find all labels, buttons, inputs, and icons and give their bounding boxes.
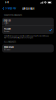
staticText: Select the language you want to use in t… (4, 35, 49, 39)
button[interactable]: Русский (2, 26, 54, 34)
staticText: English (4, 19, 11, 22)
staticText: Language (22, 7, 34, 10)
staticText: English (4, 22, 9, 24)
button[interactable]: Українська (2, 44, 54, 52)
button[interactable]: Orange Pay (0, 5, 18, 12)
staticText: Orange Pay (5, 7, 16, 10)
staticText: Russian (4, 30, 10, 32)
button[interactable]: English (2, 18, 54, 26)
staticText: 9:41 (5, 1, 9, 4)
staticText: Ukrainian (4, 49, 11, 51)
staticText: ALL LANGUAGES (4, 41, 16, 43)
staticText: Українська (4, 46, 14, 49)
staticText: SUGGESTED LANGUAGES (4, 15, 22, 16)
staticText: Русский (4, 28, 11, 30)
